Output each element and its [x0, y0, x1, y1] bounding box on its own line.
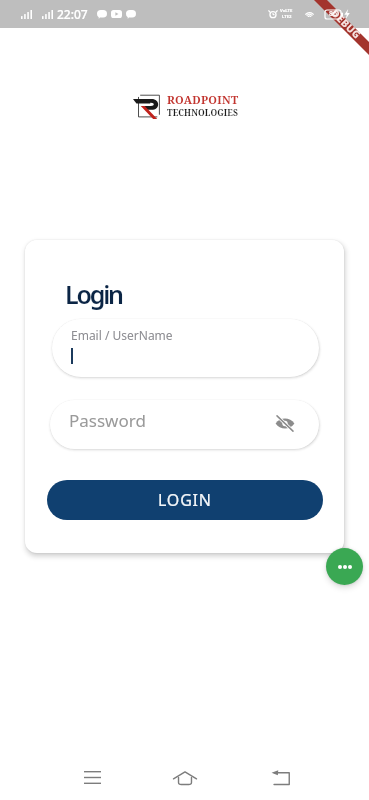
button[interactable]: Back [258, 755, 303, 800]
button[interactable]: LOGIN [47, 480, 323, 520]
button[interactable]: Home [162, 755, 207, 800]
staticText: VoLTE [280, 8, 293, 14]
staticText: ROADPOINT [167, 92, 239, 107]
button[interactable]: More options [326, 548, 363, 585]
staticText: TECHNOLOGIES [167, 107, 239, 119]
staticText: 22:07 [57, 6, 88, 22]
staticText: DEBUG [328, 6, 365, 42]
staticText: LOGIN [158, 489, 212, 511]
staticText: Login [65, 277, 122, 311]
staticText: Email / UserName [71, 327, 173, 343]
button[interactable]: Password [50, 400, 319, 449]
button[interactable]: Recents [70, 755, 115, 800]
button[interactable]: Show password [272, 410, 298, 436]
staticText: LTE2 [282, 14, 292, 20]
staticText: 86 [329, 9, 338, 19]
staticText: Password [69, 409, 146, 432]
button[interactable]: Email / UserName [52, 319, 319, 377]
